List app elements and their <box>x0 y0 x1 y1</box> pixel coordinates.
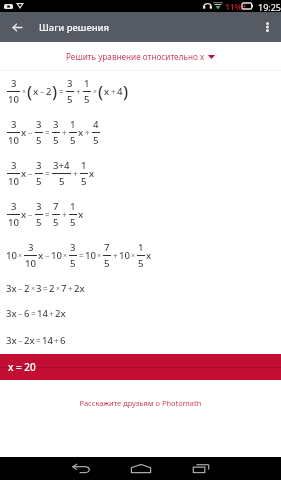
staticText: 1 <box>138 241 144 254</box>
staticText: − <box>40 86 45 97</box>
staticText: 10 <box>8 93 19 106</box>
staticText: 10 <box>25 257 36 270</box>
staticText: × <box>93 87 98 97</box>
staticText: 3 <box>70 241 76 254</box>
staticText: − <box>18 283 23 294</box>
staticText: + <box>85 127 90 138</box>
staticText: 11% <box>225 1 243 12</box>
staticText: 5 <box>53 134 59 147</box>
staticText: 10 <box>8 216 19 229</box>
button[interactable]: x = 20 <box>0 354 281 380</box>
staticText: x <box>78 126 84 139</box>
staticText: − <box>28 127 33 138</box>
staticText: 4 <box>93 118 99 131</box>
button[interactable]: Back <box>0 12 34 42</box>
staticText: 5 <box>93 134 99 147</box>
staticText: x <box>78 208 84 221</box>
staticText: 5 <box>36 134 42 147</box>
staticText: = <box>45 168 50 179</box>
staticText: 3+4 <box>53 159 70 172</box>
staticText: + <box>49 308 54 319</box>
staticText: 10 <box>6 249 17 262</box>
staticText: x <box>38 249 44 262</box>
staticText: + <box>76 86 81 97</box>
staticText: − <box>45 250 50 261</box>
staticText: x <box>21 208 27 221</box>
staticText: 3 <box>36 200 42 213</box>
staticText: 1 <box>70 118 76 131</box>
staticText: 3 <box>53 118 59 131</box>
staticText: 2 <box>49 282 55 295</box>
staticText: 14 <box>37 307 48 320</box>
staticText: ( <box>27 80 33 102</box>
staticText: 3x <box>6 282 17 295</box>
staticText: × <box>97 251 102 261</box>
staticText: + <box>54 335 59 346</box>
button[interactable]: Recent apps <box>177 457 224 480</box>
staticText: 3 <box>36 118 42 131</box>
staticText: x <box>104 85 110 98</box>
staticText: × <box>63 251 68 261</box>
staticText: ) <box>123 80 129 102</box>
staticText: 5 <box>81 175 87 188</box>
staticText: 3 <box>67 77 73 90</box>
staticText: = <box>43 283 48 294</box>
staticText: = <box>79 250 84 261</box>
staticText: x <box>21 126 27 139</box>
staticText: 6 <box>24 307 30 320</box>
staticText: 5 <box>70 216 76 229</box>
staticText: 2 <box>46 85 52 98</box>
staticText: Решить уравнение относительно x <box>66 51 205 62</box>
staticText: 5 <box>53 216 59 229</box>
staticText: 1 <box>70 200 76 213</box>
staticText: 1 <box>84 77 90 90</box>
staticText: x <box>89 167 95 180</box>
staticText: 2x <box>24 334 35 347</box>
button[interactable]: More options <box>253 12 281 42</box>
staticText: − <box>18 335 23 346</box>
staticText: 5 <box>36 216 42 229</box>
staticText: + <box>62 127 67 138</box>
staticText: + <box>62 209 67 220</box>
staticText: × <box>56 284 61 294</box>
staticText: = <box>36 335 41 346</box>
staticText: Шаги решения <box>39 21 110 34</box>
staticText: x <box>21 167 27 180</box>
staticText: 10 <box>8 175 19 188</box>
staticText: 3x <box>6 307 17 320</box>
button[interactable]: Home <box>117 457 164 480</box>
staticText: + <box>73 168 78 179</box>
staticText: 14 <box>42 334 53 347</box>
staticText: 5 <box>36 175 42 188</box>
staticText: 19:25 <box>258 1 281 13</box>
button[interactable]: Решить уравнение относительно x <box>0 42 281 70</box>
staticText: 5 <box>59 175 65 188</box>
staticText: = <box>45 209 50 220</box>
staticText: 3 <box>28 241 34 254</box>
staticText: × <box>22 87 27 97</box>
staticText: 2 <box>24 282 30 295</box>
staticText: + <box>68 283 73 294</box>
button[interactable]: Расскажите друзьям о Photomath <box>0 398 281 408</box>
staticText: 3 <box>11 200 17 213</box>
staticText: + <box>111 86 116 97</box>
staticText: x <box>146 249 152 262</box>
staticText: 5 <box>67 93 73 106</box>
staticText: − <box>28 168 33 179</box>
button[interactable]: Back <box>58 457 105 480</box>
staticText: × <box>31 284 36 294</box>
staticText: 1 <box>81 159 87 172</box>
staticText: 3 <box>11 77 17 90</box>
staticText: × <box>131 251 136 261</box>
staticText: 3 <box>11 118 17 131</box>
staticText: = <box>31 308 36 319</box>
staticText: 10 <box>119 249 130 262</box>
staticText: 2x <box>55 307 66 320</box>
staticText: 7 <box>53 200 59 213</box>
staticText: ) <box>52 80 58 102</box>
staticText: 2x <box>74 282 85 295</box>
staticText: − <box>18 308 23 319</box>
staticText: = <box>45 127 50 138</box>
staticText: 10 <box>85 249 96 262</box>
staticText: 3x <box>6 334 17 347</box>
